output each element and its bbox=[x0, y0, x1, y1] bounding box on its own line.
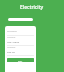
staticText: Account bbox=[7, 36, 16, 39]
staticText: Amount bbox=[7, 46, 16, 49]
staticText: PAY bbox=[18, 59, 23, 62]
staticText: Electricity bbox=[20, 4, 44, 11]
button[interactable] bbox=[8, 18, 33, 21]
staticText: Provider bbox=[7, 29, 17, 32]
staticText: 4521 8890 bbox=[7, 40, 20, 43]
button[interactable]: PAY bbox=[7, 58, 34, 62]
staticText: 250.00 bbox=[7, 50, 15, 53]
